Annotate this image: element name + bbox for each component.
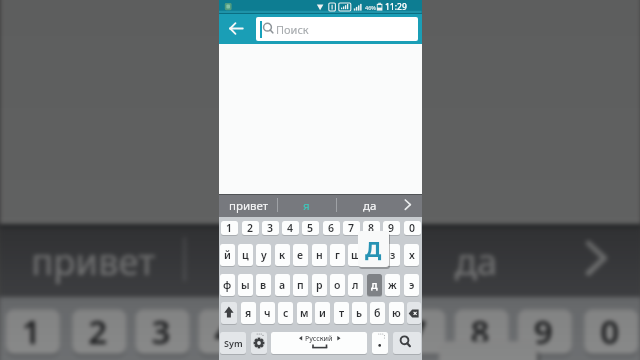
staticText: 1	[22, 310, 44, 354]
staticText: 2	[247, 221, 254, 235]
staticText: ш	[351, 248, 361, 262]
staticText: ь	[356, 306, 363, 320]
staticText: привет	[229, 198, 269, 214]
staticText: да	[455, 237, 499, 287]
staticText: 5	[278, 310, 300, 354]
staticText: о	[334, 278, 341, 292]
staticText: х	[409, 248, 415, 262]
staticText: я	[265, 237, 287, 287]
staticText: ч	[264, 306, 271, 320]
staticText: 11:29	[385, 1, 407, 13]
staticText: и	[319, 306, 326, 320]
staticText: 4	[287, 221, 294, 235]
staticText: Поиск	[276, 22, 309, 37]
staticText: б	[374, 306, 381, 320]
staticText: ж	[388, 278, 397, 292]
staticText: р	[316, 278, 323, 292]
staticText: н	[316, 248, 323, 262]
staticText: п	[297, 278, 304, 292]
staticText: я	[245, 306, 252, 320]
staticText: 8	[471, 310, 493, 354]
staticText: ф	[223, 278, 232, 292]
staticText: 6	[328, 221, 335, 235]
staticText: ы	[241, 278, 250, 292]
staticText: й	[224, 248, 231, 262]
staticText: щ	[370, 248, 380, 262]
staticText: г	[335, 248, 340, 262]
staticText: 46%	[365, 4, 376, 11]
staticText: е	[297, 248, 304, 262]
staticText: я	[303, 198, 310, 214]
staticText: 2	[88, 310, 110, 354]
staticText: 6	[344, 310, 366, 354]
staticText: ю	[392, 306, 401, 320]
staticText: привет	[31, 237, 158, 287]
staticText: т	[339, 306, 345, 320]
staticText: в	[260, 278, 267, 292]
staticText: Русский	[305, 334, 333, 344]
staticText: з	[390, 248, 396, 262]
staticText: Д	[365, 235, 382, 264]
staticText: 5	[307, 221, 314, 235]
staticText: 0	[409, 221, 416, 235]
staticText: 4	[215, 310, 237, 354]
staticText: у	[261, 248, 267, 262]
staticText: 9	[388, 221, 395, 235]
staticText: д	[371, 278, 378, 292]
staticText: м	[300, 306, 309, 320]
staticText: 7	[407, 310, 429, 354]
staticText: 9	[534, 310, 556, 354]
staticText: Sym	[224, 337, 243, 349]
staticText: да	[363, 198, 377, 214]
staticText: 0	[600, 310, 622, 354]
staticText: 1	[226, 221, 233, 235]
staticText: 7	[348, 221, 355, 235]
staticText: 8	[368, 221, 375, 235]
staticText: ц	[242, 248, 249, 262]
staticText: 3	[151, 310, 173, 354]
staticText: с	[283, 306, 289, 320]
staticText: к	[279, 248, 286, 262]
staticText: э	[409, 278, 415, 292]
staticText: 3	[267, 221, 274, 235]
staticText: л	[352, 278, 359, 292]
staticText: а	[279, 278, 286, 292]
